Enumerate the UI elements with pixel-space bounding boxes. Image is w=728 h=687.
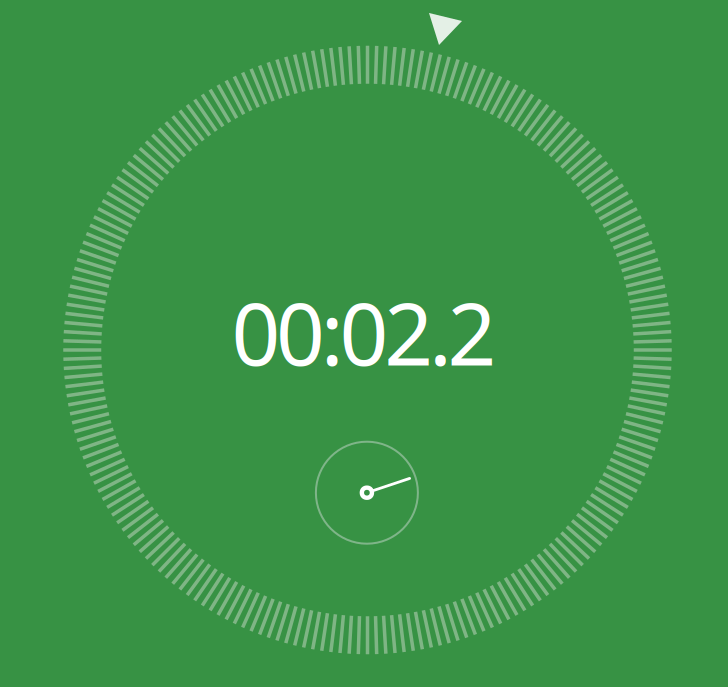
staticText: 00:02.2 bbox=[231, 276, 497, 389]
button[interactable]: Stopwatch, 00:02.2 elapsed bbox=[0, 0, 728, 687]
